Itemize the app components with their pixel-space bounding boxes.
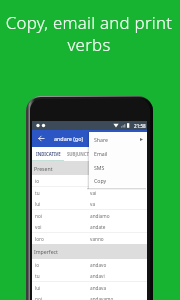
- staticText: vai: [90, 190, 97, 196]
- staticText: andavo: [90, 262, 107, 268]
- button[interactable]: Copy: [89, 174, 147, 187]
- button[interactable]: Back: [36, 133, 47, 144]
- staticText: lui: [35, 285, 41, 291]
- button[interactable]: io: [32, 175, 147, 187]
- staticText: andava: [90, 285, 107, 291]
- staticText: Email: [94, 150, 108, 157]
- button[interactable]: INDICATIVE: [32, 147, 64, 161]
- button[interactable]: tu: [32, 270, 147, 282]
- button[interactable]: lui: [32, 282, 147, 294]
- staticText: tu: [35, 190, 40, 196]
- staticText: voi: [35, 224, 42, 230]
- staticText: INDICATIVE: [36, 151, 61, 157]
- button[interactable]: Share: [89, 132, 147, 146]
- staticText: andiamo: [90, 213, 110, 219]
- staticText: Copy, email and print verbs: [0, 11, 179, 56]
- staticText: Copy: [94, 177, 107, 184]
- staticText: Present: [34, 165, 53, 172]
- button[interactable]: voi: [32, 221, 147, 233]
- staticText: vanno: [90, 236, 104, 242]
- button[interactable]: noi: [32, 293, 147, 300]
- button[interactable]: SMS: [89, 160, 147, 174]
- button[interactable]: lui: [32, 198, 147, 210]
- staticText: Share: [94, 136, 108, 143]
- staticText: tu: [35, 273, 40, 279]
- button[interactable]: io: [32, 259, 147, 271]
- staticText: loro: [35, 236, 44, 242]
- staticText: andavi: [90, 273, 105, 279]
- staticText: andare (go): [54, 135, 84, 142]
- staticText: io: [35, 262, 40, 268]
- staticText: lui: [35, 201, 41, 207]
- button[interactable]: SUBJUNCTIVE: [64, 147, 98, 161]
- staticText: vado: [90, 178, 101, 184]
- button[interactable]: noi: [32, 210, 147, 222]
- staticText: noi: [35, 296, 42, 300]
- button[interactable]: Email: [89, 146, 147, 160]
- staticText: andate: [90, 224, 106, 230]
- staticText: noi: [35, 213, 42, 219]
- staticText: andavamo: [90, 296, 114, 300]
- button[interactable]: loro: [32, 233, 147, 245]
- staticText: io: [35, 178, 40, 184]
- staticText: 21:58: [134, 123, 146, 129]
- staticText: SUBJUNCTIVE: [67, 151, 96, 157]
- staticText: va: [90, 201, 96, 207]
- staticText: SMS: [94, 164, 105, 171]
- button[interactable]: tu: [32, 187, 147, 199]
- staticText: Imperfect: [34, 248, 58, 255]
